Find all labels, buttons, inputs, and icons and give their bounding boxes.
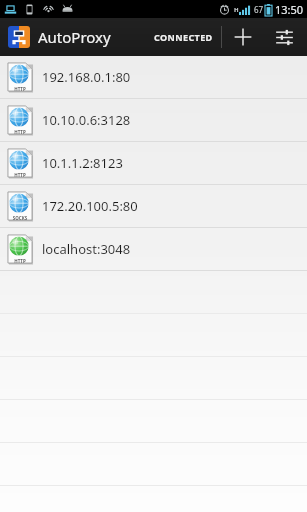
button[interactable]: HTTP — [0, 228, 307, 270]
staticText: 13:50 — [275, 2, 304, 17]
staticText: HTTP — [6, 129, 34, 135]
staticText: 192.168.0.1:80 — [42, 68, 131, 86]
staticText: 10.1.1.2:8123 — [42, 154, 123, 172]
staticText: 172.20.100.5:80 — [42, 197, 138, 215]
staticText: HTTP — [6, 258, 34, 264]
staticText: 67 — [254, 4, 264, 15]
button[interactable]: HTTP — [0, 142, 307, 184]
staticText: HTTP — [6, 172, 34, 178]
button[interactable]: CONNECTED — [146, 18, 221, 56]
button[interactable]: SOCKS — [0, 185, 307, 227]
staticText: HTTP — [6, 86, 34, 92]
staticText: CONNECTED — [154, 31, 213, 43]
button[interactable]: HTTP — [0, 56, 307, 98]
staticText: H — [234, 6, 239, 14]
staticText: AutoProxy — [38, 27, 111, 47]
staticText: 10.10.0.6:3128 — [42, 111, 131, 129]
staticText: localhost:3048 — [42, 240, 131, 258]
button[interactable]: Settings — [264, 18, 304, 56]
staticText: SOCKS — [6, 215, 34, 221]
button[interactable]: HTTP — [0, 99, 307, 141]
button[interactable]: Add proxy — [222, 18, 264, 56]
